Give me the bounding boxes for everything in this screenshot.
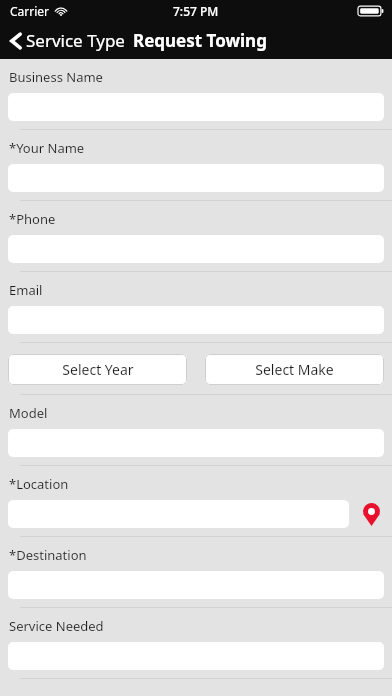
staticText: Service Type (26, 29, 125, 52)
button[interactable]: Pick location on map (358, 501, 384, 527)
staticText: Select Make (255, 360, 334, 379)
button[interactable]: Select Make (205, 354, 384, 385)
staticText: Request Towing (133, 29, 267, 52)
staticText: 7:57 PM (173, 3, 219, 19)
staticText: *Phone (9, 210, 56, 228)
staticText: Model (9, 404, 48, 422)
staticText: Service Needed (9, 617, 104, 635)
staticText: *Location (9, 475, 69, 493)
button[interactable]: Service Type (0, 25, 131, 56)
staticText: Business Name (9, 68, 103, 86)
staticText: Email (9, 281, 43, 299)
button[interactable]: Select Year (8, 354, 187, 385)
staticText: Carrier (10, 3, 50, 19)
staticText: *Your Name (9, 139, 85, 157)
staticText: Select Year (62, 360, 134, 379)
staticText: *Destination (9, 546, 87, 564)
